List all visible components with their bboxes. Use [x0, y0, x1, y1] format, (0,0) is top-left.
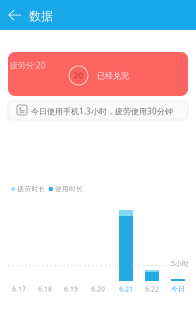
- staticText: 6.20: [91, 285, 105, 293]
- staticText: 疲劳分:20: [10, 60, 46, 71]
- staticText: 20: [73, 70, 83, 81]
- staticText: 6.22: [145, 285, 159, 293]
- staticText: 5小时: [171, 259, 189, 268]
- staticText: 疲劳时长: [17, 185, 45, 193]
- button[interactable]: Back: [0, 0, 28, 30]
- staticText: 今日使用手机1.3小时，疲劳使用30分钟: [31, 106, 173, 117]
- staticText: 已经兑完: [97, 71, 129, 81]
- staticText: 使用时长: [55, 185, 83, 193]
- staticText: 数据: [29, 9, 53, 24]
- staticText: 今日: [171, 285, 185, 293]
- staticText: 6.21: [119, 285, 133, 293]
- staticText: 6.19: [64, 285, 78, 293]
- staticText: 6.18: [38, 285, 52, 293]
- staticText: 6.17: [12, 285, 26, 293]
